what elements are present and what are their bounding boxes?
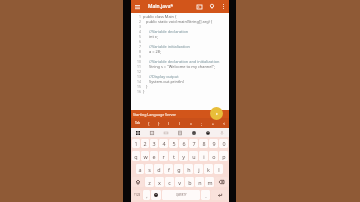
button[interactable]: q — [132, 151, 140, 161]
button[interactable]: n — [195, 177, 204, 187]
button[interactable]: x — [155, 177, 164, 187]
button[interactable]: y — [179, 151, 188, 161]
staticText: . — [205, 192, 207, 199]
button[interactable]: QWERTY — [162, 190, 200, 200]
staticText: g — [177, 166, 181, 173]
button[interactable]: Show hints — [207, 2, 216, 11]
staticText: a — [138, 166, 142, 173]
button[interactable]: b — [185, 177, 194, 187]
button[interactable]: j — [194, 164, 203, 174]
button[interactable]: Settings — [187, 128, 201, 137]
staticText: a = 28; — [149, 49, 161, 54]
button[interactable]: Tab — [131, 118, 144, 128]
staticText: 16 — [137, 89, 141, 94]
button[interactable]: u — [189, 151, 198, 161]
button[interactable]: p — [219, 151, 228, 161]
staticText: h — [187, 166, 191, 173]
staticText: 10 — [137, 59, 141, 64]
button[interactable]: 7 — [189, 139, 198, 148]
staticText: //Variable declaration — [149, 29, 189, 34]
button[interactable]: 4 — [159, 139, 168, 148]
staticText: 2 — [143, 140, 147, 147]
staticText: v — [178, 179, 181, 186]
button[interactable]: i — [199, 151, 208, 161]
button[interactable]: } — [154, 118, 164, 128]
staticText: b — [188, 179, 192, 186]
button[interactable]: , — [143, 190, 150, 200]
staticText: 11 — [137, 64, 141, 69]
button[interactable]: f — [164, 164, 173, 174]
button[interactable]: Emoji — [201, 128, 215, 137]
button[interactable]: 8 — [199, 139, 208, 148]
button[interactable]: ?123 — [132, 190, 142, 200]
staticText: 0 — [222, 140, 226, 147]
staticText: 7 — [192, 140, 196, 147]
staticText: } — [158, 121, 160, 126]
button[interactable]: k — [204, 164, 213, 174]
staticText: 1 — [134, 140, 138, 147]
staticText: y — [182, 153, 185, 160]
button[interactable]: Backspace — [215, 177, 228, 187]
button[interactable]: ) — [174, 118, 185, 128]
staticText: } — [146, 84, 148, 89]
staticText: 4 — [139, 29, 141, 34]
button[interactable]: 6 — [179, 139, 188, 148]
staticText: //Display output — [149, 74, 179, 79]
staticText: + — [212, 121, 214, 126]
button[interactable]: 9 — [209, 139, 218, 148]
button[interactable]: . — [201, 190, 210, 200]
button[interactable]: { — [144, 118, 154, 128]
staticText: 2 — [139, 19, 141, 24]
staticText: System.out.println( — [149, 79, 184, 84]
button[interactable]: v — [175, 177, 184, 187]
button[interactable]: Apps — [131, 128, 145, 137]
staticText: l — [218, 166, 220, 173]
button[interactable]: 0 — [219, 139, 228, 148]
button[interactable]: w — [141, 151, 149, 161]
staticText: } — [143, 89, 145, 94]
button[interactable]: e — [150, 151, 158, 161]
button[interactable]: Emoji — [151, 190, 161, 200]
button[interactable]: m — [205, 177, 214, 187]
button[interactable]: Voice input — [215, 128, 229, 137]
button[interactable]: Clipboard — [173, 128, 187, 137]
button[interactable]: t — [169, 151, 178, 161]
button[interactable]: d — [154, 164, 163, 174]
staticText: f — [168, 166, 170, 173]
button[interactable]: Shift — [132, 177, 144, 187]
button[interactable]: 5 — [169, 139, 178, 148]
button[interactable]: g — [174, 164, 183, 174]
button[interactable]: s — [145, 164, 153, 174]
button[interactable]: 3 — [150, 139, 158, 148]
button[interactable]: + — [207, 118, 218, 128]
staticText: 13 — [137, 74, 141, 79]
button[interactable]: z — [145, 177, 154, 187]
button[interactable]: Run — [210, 107, 223, 120]
button[interactable]: a — [136, 164, 144, 174]
button[interactable]: GIF — [159, 128, 173, 137]
button[interactable]: Enter — [211, 190, 228, 200]
button[interactable]: o — [209, 151, 218, 161]
staticText: Main.java* — [148, 3, 174, 10]
staticText: ( — [168, 121, 170, 126]
button[interactable]: ( — [164, 118, 174, 128]
button[interactable]: Toggle preview panel — [195, 2, 204, 11]
staticText: w — [143, 153, 148, 160]
button[interactable]: Stickers — [145, 128, 159, 137]
button[interactable]: l — [214, 164, 223, 174]
staticText: o — [212, 153, 216, 160]
staticText: Tab — [135, 121, 141, 125]
button[interactable]: More options — [219, 2, 228, 11]
button[interactable]: h — [184, 164, 193, 174]
button[interactable]: 1 — [132, 139, 140, 148]
button[interactable]: = — [185, 118, 196, 128]
button[interactable]: c — [165, 177, 174, 187]
button[interactable]: 2 — [141, 139, 149, 148]
button[interactable]: Open navigation menu — [133, 2, 142, 11]
button[interactable]: ; — [196, 118, 207, 128]
button[interactable]: r — [159, 151, 168, 161]
button[interactable]: < — [218, 118, 229, 128]
staticText: 3 — [139, 24, 141, 29]
staticText: q — [134, 153, 138, 160]
staticText: QWERTY — [176, 193, 187, 197]
